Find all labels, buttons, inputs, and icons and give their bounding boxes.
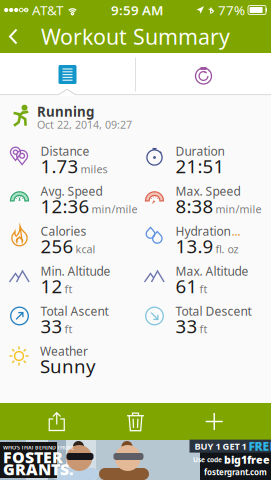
staticText: Workout Summary bbox=[41, 22, 230, 51]
staticText: AT&T bbox=[32, 1, 63, 19]
staticText: Weather bbox=[40, 343, 88, 359]
staticText: Use code bbox=[193, 455, 222, 464]
button[interactable]: Min. Altitude bbox=[0, 256, 135, 296]
button[interactable]: Total Descent bbox=[135, 296, 270, 336]
button[interactable]: Calories bbox=[0, 216, 135, 256]
staticText: kcal bbox=[75, 242, 95, 256]
staticText: ft bbox=[64, 282, 72, 296]
button[interactable]: Delete bbox=[113, 403, 157, 439]
staticText: 8:38 bbox=[175, 194, 213, 218]
staticText: min/mile bbox=[215, 202, 261, 216]
staticText: Max. Speed bbox=[175, 183, 240, 199]
button[interactable]: Total Ascent bbox=[0, 296, 135, 336]
staticText: BUY 1 GET 1 bbox=[194, 440, 246, 452]
staticText: ft bbox=[64, 322, 72, 336]
staticText: ft bbox=[199, 282, 207, 296]
staticText: ... bbox=[231, 223, 240, 239]
button[interactable]: Hydration bbox=[135, 216, 270, 256]
staticText: Hydration bbox=[175, 223, 230, 239]
button[interactable]: Weather bbox=[0, 336, 135, 376]
staticText: 61 bbox=[175, 274, 197, 298]
staticText: big1free bbox=[224, 453, 270, 467]
button[interactable]: Avg. Speed bbox=[0, 176, 135, 216]
staticText: ft bbox=[199, 322, 207, 336]
staticText: Max. Altitude bbox=[175, 263, 248, 279]
staticText: Calories bbox=[40, 223, 86, 239]
staticText: Distance bbox=[40, 143, 89, 159]
staticText: miles bbox=[80, 162, 107, 176]
staticText: fostergrant.com bbox=[204, 467, 267, 477]
staticText: 256 bbox=[40, 234, 73, 258]
staticText: Duration bbox=[175, 143, 224, 159]
staticText: 33 bbox=[40, 314, 62, 338]
button[interactable]: Distance bbox=[0, 136, 135, 176]
staticText: 77% bbox=[218, 1, 245, 19]
staticText: Total Descent bbox=[175, 303, 251, 319]
button[interactable]: Max. Speed bbox=[135, 176, 270, 216]
staticText: 1.73 bbox=[40, 154, 78, 178]
staticText: 21:51 bbox=[175, 154, 224, 178]
button[interactable]: Summary bbox=[0, 53, 135, 95]
staticText: Running bbox=[37, 103, 94, 120]
button[interactable]: Share bbox=[35, 403, 79, 439]
staticText: fl. oz bbox=[215, 242, 238, 256]
button[interactable]: Foster Grants advertisement bbox=[0, 440, 271, 480]
staticText: Min. Altitude bbox=[40, 263, 110, 279]
button[interactable]: Splits bbox=[136, 53, 271, 95]
staticText: GRANTS. bbox=[3, 458, 74, 480]
staticText: 12:36 bbox=[40, 194, 89, 218]
staticText: Total Ascent bbox=[40, 303, 108, 319]
staticText: Oct 22, 2014, 09:27 bbox=[37, 117, 132, 132]
staticText: 33 bbox=[175, 314, 197, 338]
staticText: Avg. Speed bbox=[40, 183, 102, 199]
staticText: WHO'S THAT BEHIND THOSE bbox=[3, 444, 74, 451]
staticText: FOSTER bbox=[3, 446, 63, 468]
button[interactable]: Max. Altitude bbox=[135, 256, 270, 296]
staticText: 12 bbox=[40, 274, 62, 298]
staticText: Sunny bbox=[40, 354, 96, 378]
staticText: 9:59 AM bbox=[111, 1, 163, 19]
button[interactable]: Duration bbox=[135, 136, 270, 176]
staticText: FREE bbox=[248, 438, 271, 454]
staticText: 13.9 bbox=[175, 234, 213, 258]
staticText: min/mile bbox=[91, 202, 137, 216]
button[interactable]: Add bbox=[192, 403, 236, 439]
button[interactable]: Back bbox=[0, 20, 29, 53]
